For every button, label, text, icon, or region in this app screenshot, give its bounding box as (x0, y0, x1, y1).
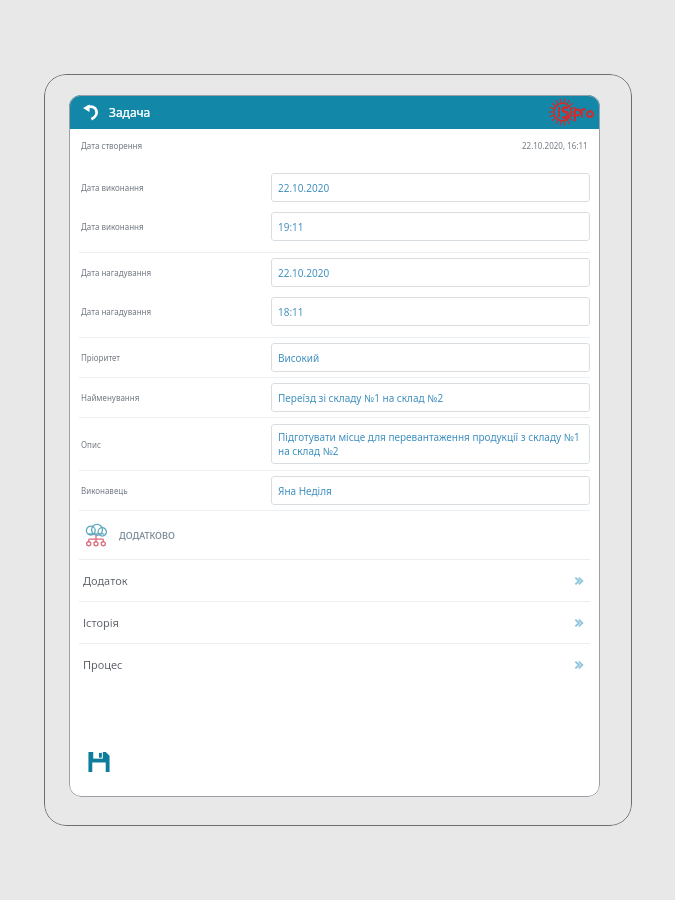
button[interactable]: Дата виконання (69, 207, 600, 246)
staticText: Опис (81, 439, 101, 450)
staticText: Високий (278, 351, 320, 365)
staticText: Процес (83, 657, 123, 672)
button[interactable]: Історія (69, 602, 600, 643)
staticText: Додаток (83, 573, 128, 588)
staticText: 18:11 (278, 305, 304, 319)
staticText: ДОДАТКОВО (119, 529, 175, 541)
staticText: 19:11 (278, 220, 304, 234)
staticText: Задача (109, 104, 151, 120)
staticText: Найменування (81, 392, 140, 403)
staticText: Виконавець (81, 485, 128, 496)
staticText: Підготувати місце для перевантаження про… (278, 430, 583, 458)
staticText: 22.10.2020, 16:11 (522, 140, 588, 151)
staticText: Дата виконання (81, 182, 144, 193)
button[interactable]: Процес (69, 644, 600, 685)
staticText: Історія (83, 615, 119, 630)
button[interactable]: Back (79, 98, 153, 126)
button[interactable]: Дата виконання (69, 168, 600, 207)
staticText: Дата виконання (81, 221, 144, 232)
button[interactable]: Save (81, 744, 117, 780)
button[interactable]: Дата нагадування (69, 253, 600, 292)
staticText: Дата створення (81, 140, 143, 151)
button[interactable]: Виконавець (69, 471, 600, 510)
staticText: 22.10.2020 (278, 266, 330, 280)
button[interactable]: Опис (69, 418, 600, 470)
staticText: Яна Неділя (278, 484, 332, 498)
staticText: Дата нагадування (81, 306, 152, 317)
staticText: Переїзд зі складу №1 на склад №2 (278, 391, 444, 405)
button[interactable]: ISpro logo (546, 97, 596, 127)
staticText: Пріоритет (81, 352, 121, 363)
button[interactable]: Пріоритет (69, 338, 600, 377)
staticText: Дата нагадування (81, 267, 152, 278)
button[interactable]: Додаток (69, 560, 600, 601)
staticText: 22.10.2020 (278, 181, 330, 195)
button[interactable]: Дата нагадування (69, 292, 600, 331)
button[interactable]: Найменування (69, 378, 600, 417)
